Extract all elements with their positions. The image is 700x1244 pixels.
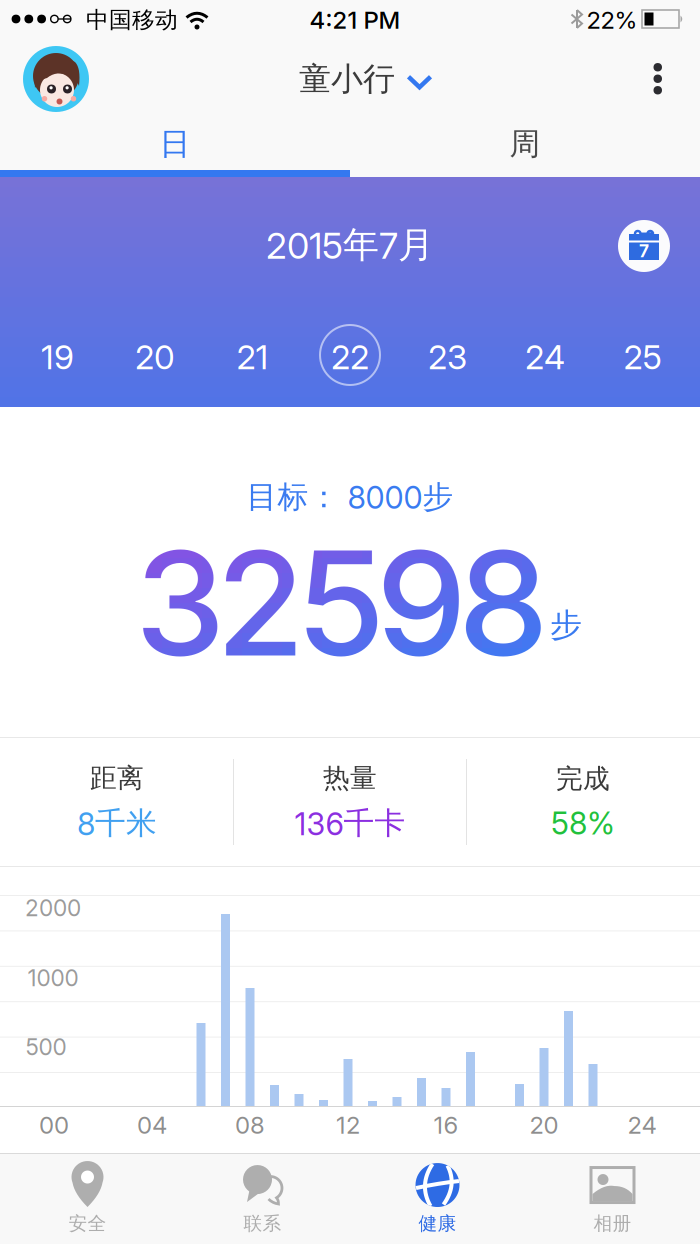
button[interactable]: 20 — [106, 326, 204, 388]
staticText: 24 — [525, 337, 565, 377]
button[interactable]: Pick date — [618, 220, 670, 272]
staticText: 500 — [25, 1034, 66, 1060]
button[interactable]: Switch child — [283, 59, 417, 99]
staticText: 2000 — [25, 895, 81, 921]
button[interactable]: 23 — [399, 326, 496, 388]
staticText: 距离 — [90, 762, 144, 795]
staticText: 完成 — [556, 762, 610, 795]
staticText: 童小行 — [299, 59, 395, 99]
staticText: 23 — [428, 337, 467, 377]
staticText: 12 — [336, 1111, 360, 1139]
button[interactable]: 日 — [0, 118, 350, 170]
button[interactable]: 24 — [496, 326, 594, 388]
button[interactable]: 25 — [594, 326, 691, 388]
button[interactable]: 21 — [204, 326, 301, 388]
staticText: 7 — [639, 241, 649, 261]
staticText: 目标： 8000步 — [246, 478, 453, 516]
staticText: 22 — [331, 337, 369, 377]
staticText: 联系 — [243, 1212, 281, 1235]
staticText: 20 — [135, 337, 175, 377]
staticText: 4:21 PM — [309, 6, 400, 34]
staticText: 20 — [529, 1111, 558, 1139]
staticText: 136千卡 — [294, 804, 405, 842]
staticText: 健康 — [418, 1212, 456, 1235]
button[interactable]: 19 — [9, 326, 106, 388]
staticText: 日 — [159, 125, 190, 163]
button[interactable]: 周 — [350, 118, 700, 170]
staticText: 21 — [236, 337, 268, 377]
button[interactable]: 22 — [301, 326, 399, 388]
staticText: 58% — [551, 805, 615, 841]
button[interactable]: 相册 — [525, 1154, 700, 1244]
staticText: 热量 — [323, 762, 377, 795]
staticText: 16 — [433, 1111, 458, 1139]
staticText: 相册 — [593, 1212, 631, 1235]
staticText: 24 — [627, 1111, 656, 1139]
staticText: 25 — [623, 337, 661, 377]
button[interactable]: 安全 — [0, 1154, 175, 1244]
staticText: 00 — [39, 1111, 69, 1139]
staticText: 08 — [235, 1111, 265, 1139]
staticText: 安全 — [68, 1212, 106, 1235]
button[interactable]: Profile — [0, 46, 89, 112]
staticText: 中国移动 — [86, 6, 178, 34]
button[interactable]: 联系 — [175, 1154, 350, 1244]
button[interactable]: More — [653, 63, 700, 95]
staticText: 1000 — [27, 965, 78, 991]
button[interactable]: 健康 — [350, 1154, 525, 1244]
staticText: 19 — [41, 337, 74, 377]
staticText: 22% — [586, 6, 637, 34]
staticText: 04 — [137, 1111, 167, 1139]
staticText: 周 — [509, 125, 540, 163]
staticText: 步 — [550, 605, 582, 645]
staticText: 8千米 — [77, 804, 157, 842]
staticText: 2015年7月 — [266, 223, 434, 267]
